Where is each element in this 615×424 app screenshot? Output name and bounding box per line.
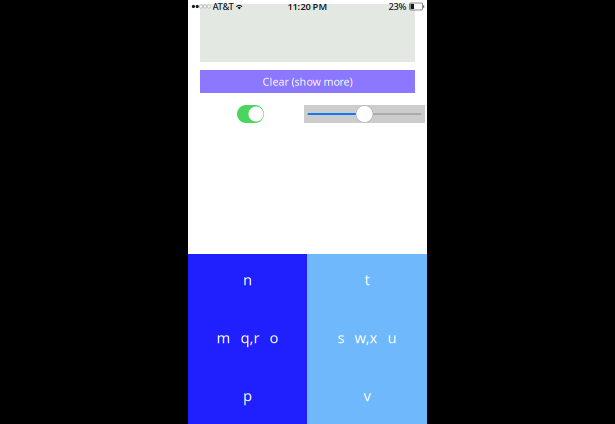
staticText: Clear (show more) xyxy=(262,74,352,89)
button[interactable]: Right section xyxy=(307,254,427,424)
staticText: u xyxy=(387,328,396,347)
staticText: p xyxy=(243,386,252,405)
staticText: AT&T xyxy=(212,0,233,13)
staticText: s xyxy=(337,328,344,347)
staticText: 11:20 PM xyxy=(287,0,327,13)
staticText: 23% xyxy=(389,0,407,13)
button[interactable]: Switch, on xyxy=(237,105,264,123)
button[interactable]: Left section xyxy=(188,254,307,424)
staticText: w,x xyxy=(354,328,377,347)
button[interactable]: Clear (show more) xyxy=(200,70,415,93)
staticText: n xyxy=(243,270,252,289)
staticText: v xyxy=(363,386,370,405)
button[interactable]: Slider xyxy=(304,105,425,123)
staticText: q,r xyxy=(240,328,259,347)
staticText: o xyxy=(269,328,278,347)
staticText: t xyxy=(364,270,369,289)
staticText: m xyxy=(216,328,230,347)
